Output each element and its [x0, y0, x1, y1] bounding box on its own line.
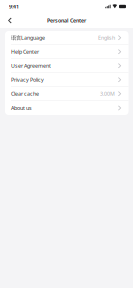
staticText: English — [98, 34, 115, 41]
staticText: 语言Language — [11, 34, 45, 41]
button[interactable]: Clear cache — [5, 87, 128, 101]
button[interactable]: About us — [5, 101, 128, 115]
button[interactable]: Back — [3, 14, 16, 27]
staticText: Personal Center — [47, 17, 86, 24]
staticText: About us — [11, 104, 32, 112]
staticText: 3.00M — [100, 90, 115, 97]
button[interactable]: Help Center — [5, 45, 128, 59]
button[interactable]: User Agreement — [5, 59, 128, 73]
staticText: Help Center — [11, 48, 39, 55]
button[interactable]: 语言Language — [5, 31, 128, 45]
staticText: 9:41 — [9, 3, 19, 10]
staticText: User Agreement — [11, 62, 51, 69]
staticText: Privacy Policy — [11, 76, 44, 83]
staticText: Clear cache — [11, 90, 39, 97]
button[interactable]: Privacy Policy — [5, 73, 128, 87]
